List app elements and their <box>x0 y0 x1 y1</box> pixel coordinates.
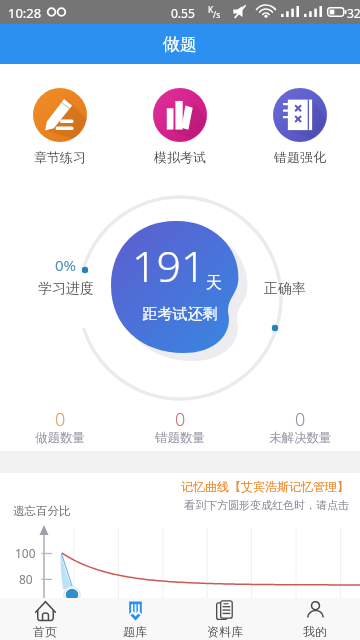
button[interactable]: 模拟考试 <box>120 88 240 165</box>
staticText: 0 <box>175 407 186 432</box>
staticText: 做题数量 <box>35 430 85 446</box>
button[interactable]: 错题强化 <box>240 88 360 165</box>
button[interactable]: 0 <box>120 407 240 448</box>
staticText: 距考试还剩 <box>100 305 260 324</box>
button[interactable]: 我的 <box>270 600 360 639</box>
staticText: 天 <box>206 273 222 293</box>
button[interactable]: 首页 <box>0 600 90 639</box>
staticText: 看到下方圆形变成红色时，请点击 <box>184 498 349 512</box>
staticText: 0 <box>55 407 66 432</box>
staticText: 正确率 <box>245 280 325 298</box>
staticText: 191 <box>132 236 206 295</box>
staticText: /s <box>213 9 221 21</box>
staticText: 章节练习 <box>34 149 86 165</box>
staticText: 0.55 <box>171 5 195 21</box>
staticText: 记忆曲线【艾宾浩斯记忆管理】 <box>181 479 349 494</box>
staticText: 错题强化 <box>274 149 326 165</box>
button[interactable]: 题库 <box>90 600 180 639</box>
staticText: K <box>208 4 214 16</box>
button[interactable]: 资料库 <box>180 600 270 639</box>
button[interactable]: 0 <box>0 407 120 448</box>
staticText: 0% <box>55 255 77 275</box>
staticText: 模拟考试 <box>154 149 206 165</box>
staticText: 做题 <box>163 34 197 55</box>
staticText: 错题数量 <box>155 430 205 446</box>
staticText: 32 <box>347 5 360 21</box>
staticText: 资料库 <box>207 624 243 639</box>
staticText: 题库 <box>123 624 147 639</box>
staticText: 遗忘百分比 <box>13 504 71 518</box>
button[interactable]: 章节练习 <box>0 88 120 165</box>
staticText: 首页 <box>33 624 57 639</box>
staticText: 未解决数量 <box>269 430 332 446</box>
staticText: 80 <box>19 571 33 587</box>
button[interactable]: 0 <box>240 407 360 448</box>
staticText: 100 <box>15 545 36 561</box>
staticText: 我的 <box>303 624 327 639</box>
staticText: 学习进度 <box>38 280 94 298</box>
staticText: 0 <box>295 407 306 432</box>
staticText: 10:28 <box>8 4 42 22</box>
